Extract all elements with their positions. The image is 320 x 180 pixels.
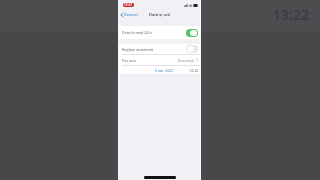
staticText: Ceas în mod 24 h <box>122 30 152 35</box>
staticText: Fus orar <box>122 58 137 63</box>
button[interactable]: Ceas în mod 24 h <box>118 26 201 39</box>
button[interactable]: Reglare automată <box>118 44 201 54</box>
staticText: General <box>124 12 138 17</box>
button[interactable]: General <box>118 11 140 18</box>
staticText: 13:22 <box>124 3 133 7</box>
button[interactable]: 6 ian. 2021 <box>118 66 201 74</box>
staticText: 6 ian. 2021 <box>155 68 174 73</box>
staticText: 13:22 <box>189 68 199 73</box>
staticText: Dată și oră <box>149 12 170 17</box>
staticText: 13:22 <box>273 6 310 24</box>
staticText: București <box>178 58 195 63</box>
button[interactable]: Recording <box>123 3 134 7</box>
button[interactable]: On <box>186 29 198 37</box>
staticText: Reglare automată <box>122 47 153 52</box>
button[interactable]: Off <box>186 45 198 53</box>
button[interactable]: Fus orar <box>118 55 201 65</box>
